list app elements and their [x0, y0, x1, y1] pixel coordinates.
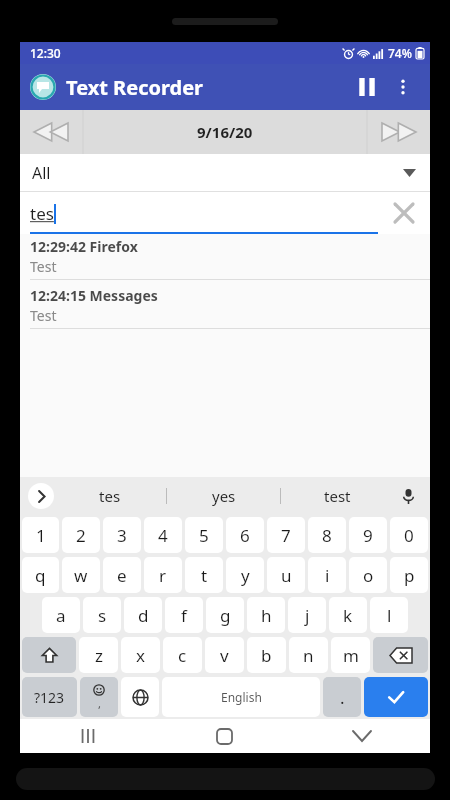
staticText: j [305, 604, 310, 627]
button[interactable]: 4 [144, 517, 182, 553]
button[interactable]: w [62, 557, 100, 593]
button[interactable]: l [370, 597, 408, 633]
staticText: 8 [322, 524, 332, 547]
staticText: n [303, 644, 314, 667]
button[interactable]: tes [54, 477, 166, 515]
button[interactable]: v [205, 637, 244, 673]
button[interactable]: yes [167, 477, 280, 515]
staticText: . [340, 686, 345, 709]
button[interactable]: 3 [103, 517, 141, 553]
staticText: yes [212, 486, 236, 506]
button[interactable]: i [308, 557, 346, 593]
button[interactable]: Pause [348, 68, 386, 106]
button[interactable]: Change language [121, 677, 159, 717]
staticText: w [74, 564, 88, 587]
staticText: b [261, 644, 272, 667]
button[interactable]: y [226, 557, 264, 593]
button[interactable]: . [323, 677, 361, 717]
staticText: All [32, 162, 51, 184]
staticText: test [324, 486, 351, 506]
button[interactable]: m [331, 637, 370, 673]
button[interactable]: 1 [22, 517, 59, 553]
button[interactable]: All [20, 154, 430, 192]
staticText: z [95, 644, 103, 667]
staticText: 5 [199, 524, 209, 547]
staticText: f [181, 604, 187, 627]
staticText: r [159, 564, 167, 587]
staticText: i [325, 564, 330, 587]
button[interactable]: 8 [308, 517, 346, 553]
button[interactable]: p [390, 557, 428, 593]
staticText: ?123 [34, 688, 65, 707]
staticText: 12:24:15 Messages [30, 286, 158, 305]
button[interactable]: 12:24:15 Messages [20, 283, 430, 332]
button[interactable]: z [79, 637, 118, 673]
staticText: Text Recorder [66, 74, 204, 101]
button[interactable]: Emoji and comma [80, 677, 118, 717]
button[interactable]: h [247, 597, 285, 633]
button[interactable]: b [247, 637, 286, 673]
button[interactable]: r [144, 557, 182, 593]
staticText: x [136, 644, 145, 667]
button[interactable]: t [185, 557, 223, 593]
button[interactable]: Shift [22, 637, 76, 673]
button[interactable]: 12:29:42 Firefox [20, 234, 430, 283]
staticText: s [98, 604, 107, 627]
staticText: , [98, 696, 101, 711]
button[interactable]: g [206, 597, 244, 633]
button[interactable]: Hide keyboard [293, 719, 430, 753]
button[interactable]: u [267, 557, 305, 593]
button[interactable]: Previous day [20, 110, 82, 154]
staticText: d [138, 604, 149, 627]
button[interactable]: x [121, 637, 160, 673]
staticText: 1 [36, 524, 46, 547]
button[interactable]: test [281, 477, 394, 515]
button[interactable]: Next day [368, 110, 430, 154]
button[interactable]: c [163, 637, 202, 673]
staticText: a [56, 604, 66, 627]
button[interactable]: d [124, 597, 162, 633]
button[interactable]: e [103, 557, 141, 593]
button[interactable]: n [289, 637, 328, 673]
button[interactable]: 0 [390, 517, 428, 553]
button[interactable]: 2 [62, 517, 100, 553]
staticText: 7 [281, 524, 291, 547]
button[interactable]: Voice input [394, 482, 422, 510]
staticText: 4 [158, 524, 168, 547]
button[interactable]: Home [156, 719, 293, 753]
staticText: 9/16/20 [197, 122, 253, 142]
staticText: 6 [240, 524, 250, 547]
button[interactable]: Done [364, 677, 428, 717]
button[interactable]: 9 [349, 517, 387, 553]
button[interactable]: o [349, 557, 387, 593]
button[interactable]: f [165, 597, 203, 633]
button[interactable]: 9/16/20 [84, 110, 366, 154]
button[interactable]: More suggestions [28, 483, 54, 509]
button[interactable]: Clear search [378, 192, 430, 234]
button[interactable]: k [329, 597, 367, 633]
staticText: 3 [117, 524, 127, 547]
staticText: e [117, 564, 127, 587]
button[interactable]: q [22, 557, 59, 593]
staticText: y [241, 564, 250, 587]
staticText: m [343, 644, 359, 667]
button[interactable]: Backspace [373, 637, 428, 673]
staticText: k [343, 604, 353, 627]
button[interactable]: a [42, 597, 80, 633]
staticText: 74% [388, 45, 412, 61]
staticText: English [221, 689, 262, 705]
staticText: 2 [76, 524, 86, 547]
button[interactable]: English [162, 677, 320, 717]
button[interactable]: Recent apps [20, 719, 156, 753]
button[interactable]: j [288, 597, 326, 633]
button[interactable]: 7 [267, 517, 305, 553]
staticText: u [281, 564, 292, 587]
staticText: c [178, 644, 187, 667]
staticText: o [363, 564, 374, 587]
button[interactable]: ?123 [22, 677, 77, 717]
button[interactable]: 6 [226, 517, 264, 553]
button[interactable]: s [83, 597, 121, 633]
button[interactable]: 5 [185, 517, 223, 553]
button[interactable]: More options [386, 70, 420, 104]
staticText: Test [30, 306, 57, 325]
